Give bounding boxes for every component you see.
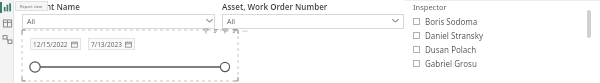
staticText: All — [27, 17, 36, 27]
staticText: 12/15/2022 — [33, 40, 68, 49]
staticText: Dusan Polach — [425, 44, 477, 55]
button[interactable]: Filter — [222, 28, 228, 34]
button[interactable]: Report view — [2, 2, 13, 13]
button[interactable]: Sort — [213, 28, 219, 34]
staticText: Asset, Work Order Number — [222, 1, 328, 12]
button[interactable]: 12/15/2022 — [22, 30, 238, 81]
button[interactable]: Gabriel Grosu — [413, 58, 583, 69]
staticText: Gabriel Grosu — [425, 58, 477, 69]
button[interactable]: Sort — [232, 28, 238, 34]
button[interactable]: Filter — [203, 28, 209, 34]
staticText: All — [227, 17, 236, 27]
button[interactable]: 7/13/2023 — [91, 38, 132, 50]
button[interactable]: All — [222, 14, 404, 29]
other: Pick date — [71, 41, 78, 48]
staticText: Inspector — [413, 2, 447, 12]
staticText: nt Name — [46, 1, 80, 12]
button[interactable]: More options — [223, 28, 229, 34]
button[interactable]: Expand — [205, 17, 214, 24]
button[interactable]: 12/15/2022 — [33, 38, 78, 50]
staticText: 7/13/2023 — [91, 40, 122, 49]
button[interactable]: Expand — [391, 17, 400, 24]
button[interactable]: More options — [242, 28, 248, 34]
button[interactable]: All — [22, 14, 215, 29]
button[interactable]: Dusan Polach — [413, 44, 583, 55]
button[interactable]: Data view — [2, 18, 13, 29]
staticText: Daniel Stransky — [425, 30, 484, 41]
button[interactable]: Model view — [2, 34, 13, 45]
button[interactable]: Boris Sodoma — [413, 16, 583, 27]
button[interactable]: Daniel Stransky — [413, 30, 583, 41]
staticText: Boris Sodoma — [425, 16, 478, 27]
other: Pick date — [125, 41, 132, 48]
staticText: Report view — [20, 4, 43, 9]
